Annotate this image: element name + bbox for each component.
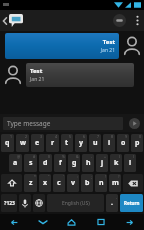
button[interactable]: Type message: [3, 117, 123, 130]
staticText: %: [62, 154, 65, 159]
button[interactable]: Shift: [1, 174, 22, 192]
button[interactable]: 2: [16, 134, 29, 152]
staticText: Jan 21: [100, 47, 115, 54]
button[interactable]: Back to conversations: [0, 10, 34, 31]
staticText: l: [129, 158, 132, 168]
button[interactable]: Recent apps: [86, 214, 115, 230]
button[interactable]: :: [67, 174, 79, 192]
staticText: v: [71, 178, 75, 188]
staticText: &: [76, 154, 79, 159]
button[interactable]: -: [82, 154, 94, 172]
staticText: 9: [125, 134, 128, 139]
staticText: (: [119, 154, 121, 159]
button[interactable]: 7: [89, 134, 101, 152]
button[interactable]: #: [24, 154, 37, 172]
staticText: Test: [30, 67, 43, 75]
staticText: ": [48, 174, 50, 179]
button[interactable]: ": [39, 174, 51, 192]
staticText: 8: [111, 134, 114, 139]
staticText: 2: [25, 134, 28, 139]
staticText: Test: [102, 38, 115, 46]
staticText: a: [13, 158, 18, 168]
staticText: #: [33, 154, 36, 159]
button[interactable]: (: [110, 154, 122, 172]
button[interactable]: Home: [57, 214, 86, 230]
button[interactable]: ': [53, 174, 65, 192]
staticText: 6: [83, 134, 86, 139]
staticText: n: [99, 178, 104, 188]
staticText: u: [93, 138, 98, 148]
staticText: g: [72, 158, 77, 168]
staticText: h: [86, 158, 91, 168]
staticText: c: [57, 178, 61, 188]
staticText: x: [43, 178, 48, 188]
button[interactable]: Test: [0, 63, 144, 87]
button[interactable]: ?: [109, 174, 121, 192]
staticText: i: [108, 138, 111, 148]
staticText: 1: [10, 134, 13, 139]
button[interactable]: Voice input: [19, 194, 31, 212]
staticText: -: [91, 154, 93, 159]
button[interactable]: 0: [131, 134, 143, 152]
button[interactable]: Change language: [33, 194, 45, 212]
button[interactable]: %: [54, 154, 66, 172]
staticText: +: [104, 154, 107, 159]
button[interactable]: ): [124, 154, 136, 172]
staticText: 4: [55, 134, 58, 139]
staticText: ;: [91, 174, 92, 179]
staticText: o: [121, 138, 126, 148]
button[interactable]: 6: [75, 134, 87, 152]
staticText: m: [112, 178, 119, 188]
staticText: z: [29, 178, 33, 188]
button[interactable]: 4: [46, 134, 59, 152]
staticText: r: [51, 138, 55, 148]
staticText: @: [17, 154, 21, 159]
button[interactable]: Return: [120, 194, 143, 212]
staticText: 7: [97, 134, 100, 139]
button[interactable]: Forward: [115, 214, 144, 230]
button[interactable]: *: [24, 174, 37, 192]
staticText: Jan 21: [30, 76, 45, 83]
staticText: q: [5, 138, 10, 148]
button[interactable]: &: [68, 154, 80, 172]
staticText: *: [34, 174, 36, 179]
button[interactable]: +: [96, 154, 108, 172]
button[interactable]: More options: [130, 10, 144, 31]
button[interactable]: ,: [106, 194, 118, 212]
staticText: f: [59, 158, 62, 168]
staticText: w: [20, 138, 26, 148]
staticText: 0: [139, 134, 142, 139]
button[interactable]: Send: [126, 115, 142, 131]
button[interactable]: Delete: [123, 174, 143, 192]
button[interactable]: Hide keyboard: [28, 214, 57, 230]
staticText: 3: [40, 134, 43, 139]
staticText: 5: [69, 134, 72, 139]
staticText: p: [135, 138, 140, 148]
button[interactable]: 3: [31, 134, 44, 152]
staticText: k: [114, 158, 119, 168]
button[interactable]: 9: [117, 134, 129, 152]
button[interactable]: 1: [1, 134, 14, 152]
staticText: e: [35, 138, 40, 148]
staticText: y: [79, 138, 83, 148]
staticText: .: [111, 198, 113, 208]
staticText: $: [48, 154, 51, 159]
button[interactable]: 5: [61, 134, 73, 152]
staticText: t: [65, 138, 69, 148]
button[interactable]: English (US): [47, 194, 104, 212]
staticText: :: [77, 174, 78, 179]
staticText: English (US): [62, 200, 90, 207]
button[interactable]: @: [9, 154, 22, 172]
button[interactable]: Call: [109, 10, 130, 31]
staticText: ?: [118, 174, 120, 179]
button[interactable]: !: [95, 174, 107, 192]
button[interactable]: Test: [0, 33, 144, 59]
button[interactable]: $: [39, 154, 52, 172]
button[interactable]: Back: [0, 214, 28, 230]
staticText: d: [43, 158, 48, 168]
button[interactable]: ;: [81, 174, 93, 192]
button[interactable]: 8: [103, 134, 115, 152]
staticText: ,: [116, 194, 117, 199]
staticText: ): [133, 154, 135, 159]
button[interactable]: ?123: [1, 194, 17, 212]
